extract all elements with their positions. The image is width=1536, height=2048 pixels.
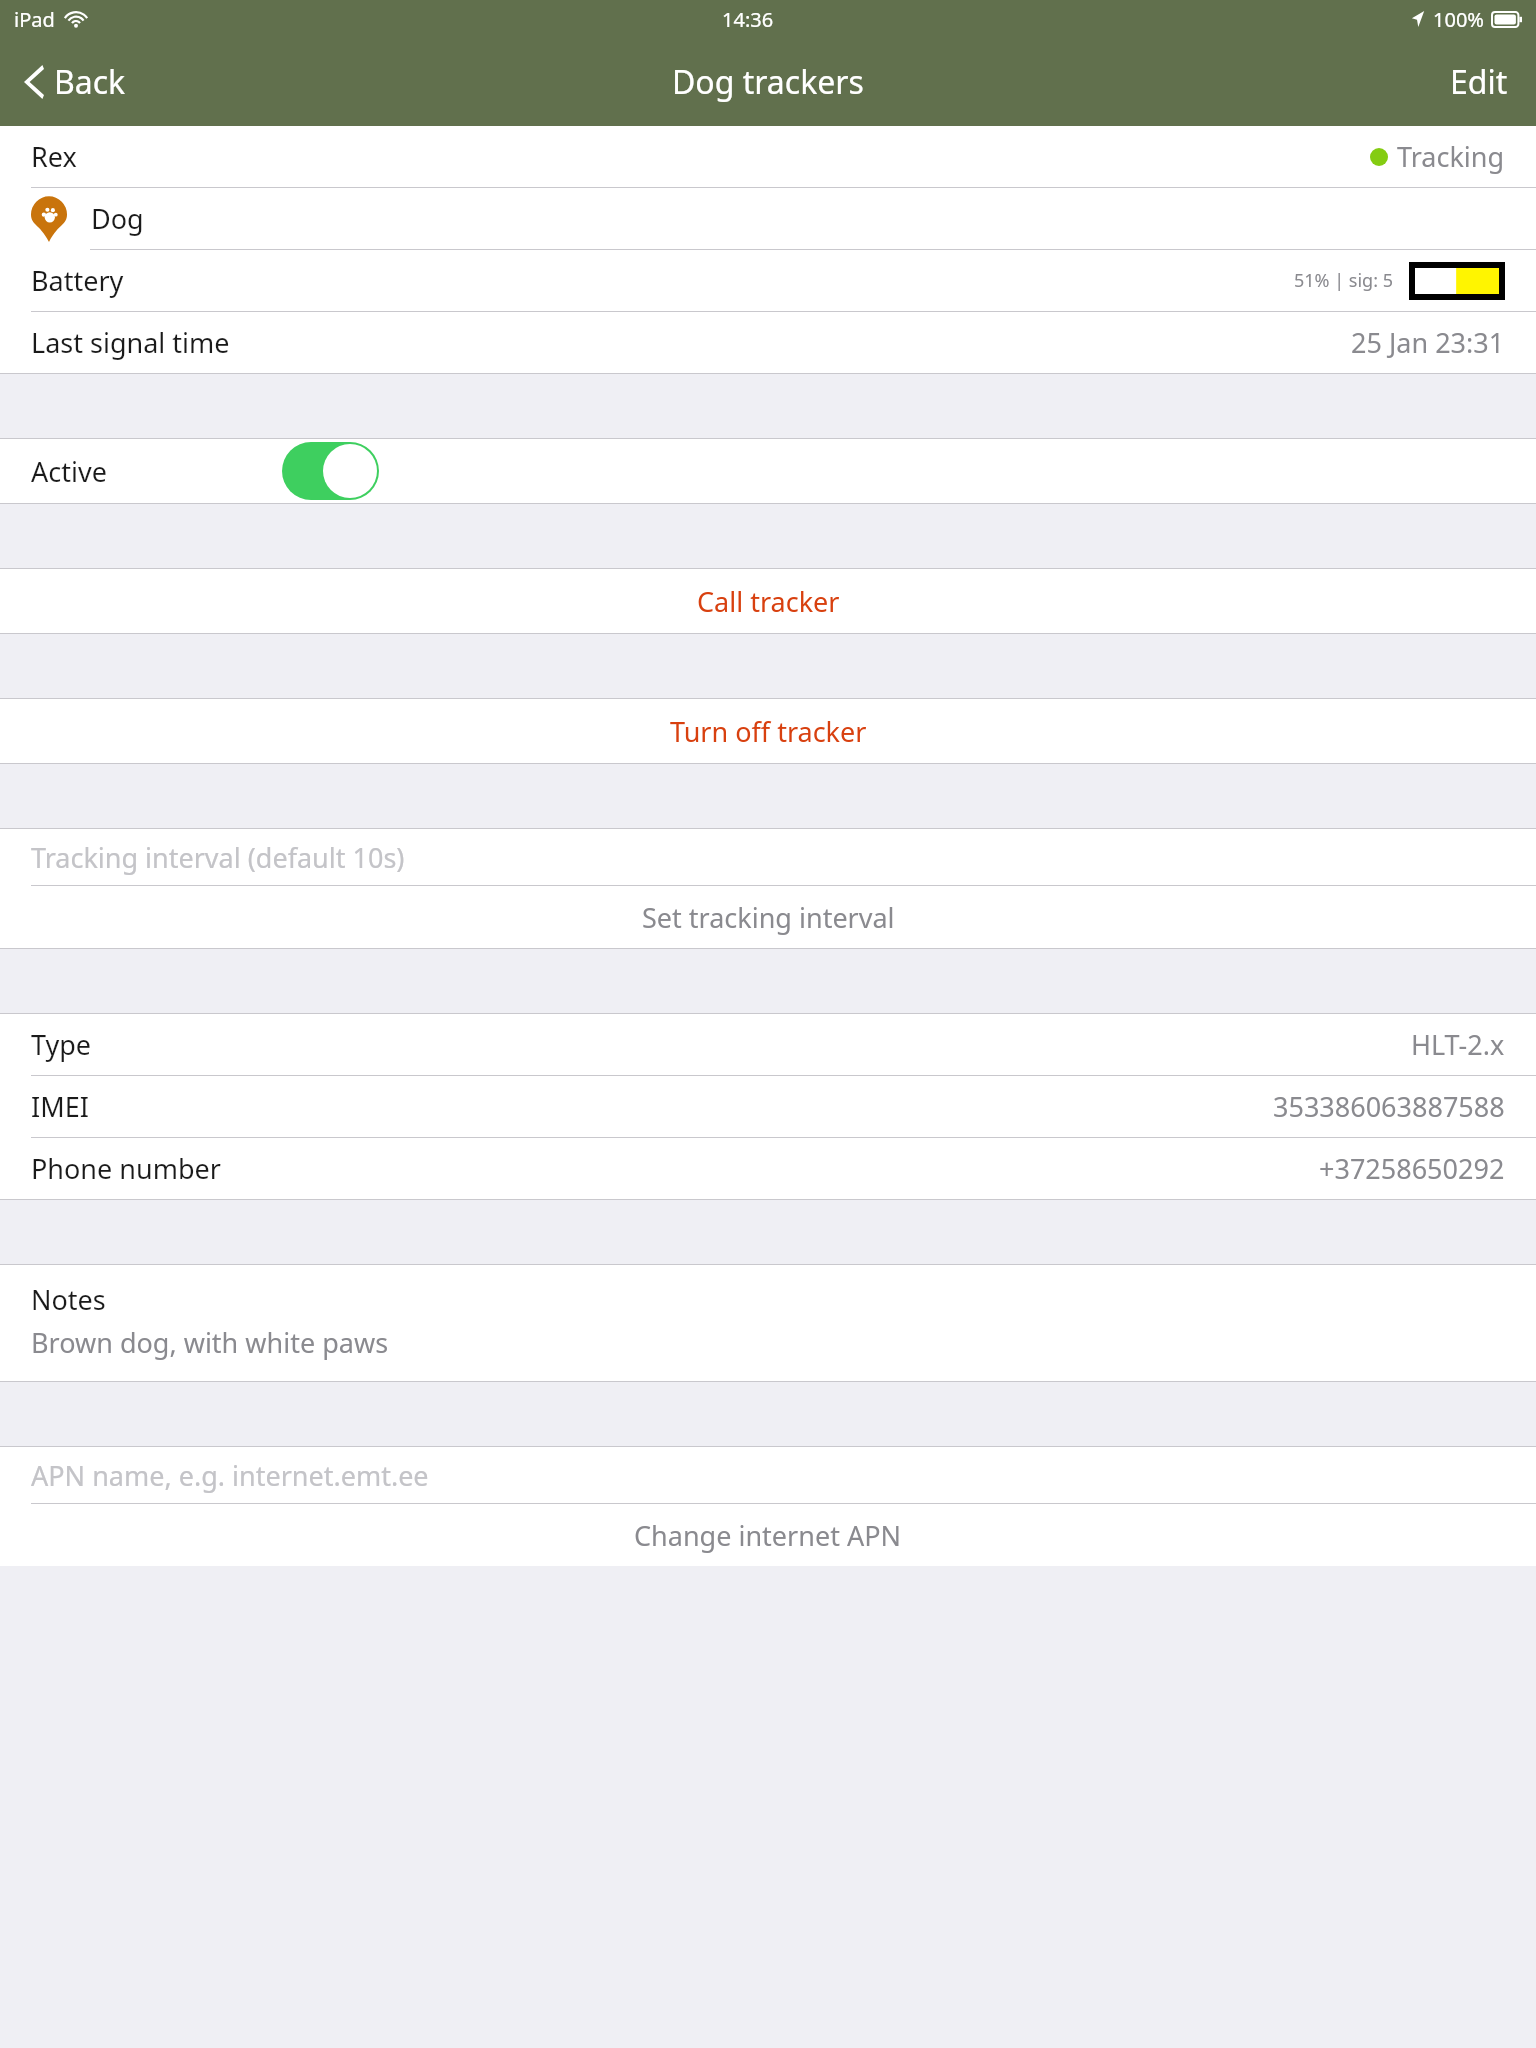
button[interactable]: Turn off tracker <box>0 699 1536 763</box>
button[interactable]: Change internet APN <box>0 1504 1536 1566</box>
staticText: Last signal time <box>31 324 230 361</box>
button[interactable]: Rex <box>0 126 1536 187</box>
staticText: APN name, e.g. internet.emt.ee <box>31 1457 429 1494</box>
staticText: 100% <box>1433 6 1484 33</box>
staticText: Tracking interval (default 10s) <box>31 839 405 876</box>
button[interactable]: Notes <box>0 1265 1536 1381</box>
staticText: Set tracking interval <box>642 899 895 936</box>
button[interactable]: Pet type <box>0 188 1536 249</box>
button[interactable]: APN name, e.g. internet.emt.ee <box>0 1447 1536 1503</box>
staticText: Tracking <box>1397 138 1505 175</box>
staticText: Battery <box>31 262 124 299</box>
staticText: Change internet APN <box>634 1517 902 1554</box>
staticText: Dog <box>91 200 144 237</box>
staticText: +37258650292 <box>1319 1150 1505 1187</box>
staticText: Active <box>31 453 107 490</box>
button[interactable]: Back <box>0 46 150 118</box>
staticText: Phone number <box>31 1150 221 1187</box>
staticText: Notes <box>31 1281 106 1318</box>
staticText: Call tracker <box>697 583 840 620</box>
staticText: 25 Jan 23:31 <box>1351 324 1505 361</box>
other: Battery 51% <box>1409 262 1505 300</box>
staticText: 353386063887588 <box>1273 1088 1505 1125</box>
staticText: Brown dog, with white paws <box>31 1324 389 1361</box>
button[interactable]: Tracking interval (default 10s) <box>0 829 1536 885</box>
button[interactable]: Active <box>0 439 1536 503</box>
button[interactable]: Last signal time <box>0 312 1536 373</box>
staticText: Back <box>54 60 126 104</box>
staticText: iPad <box>14 6 55 33</box>
staticText: IMEI <box>31 1088 89 1125</box>
button[interactable]: Active toggle, on <box>282 442 379 500</box>
staticText: 51% | sig: 5 <box>1294 268 1393 293</box>
button[interactable]: Call tracker <box>0 569 1536 633</box>
button[interactable]: IMEI <box>0 1076 1536 1137</box>
staticText: Dog trackers <box>672 60 864 104</box>
button[interactable]: Type <box>0 1014 1536 1075</box>
staticText: Type <box>31 1026 92 1063</box>
staticText: Turn off tracker <box>670 713 867 750</box>
staticText: HLT-2.x <box>1411 1026 1505 1063</box>
staticText: 14:36 <box>722 6 774 33</box>
button[interactable]: Battery <box>0 250 1536 311</box>
button[interactable]: Set tracking interval <box>0 886 1536 948</box>
other: Pet type <box>31 196 67 242</box>
button[interactable]: Edit <box>1422 46 1536 118</box>
staticText: Edit <box>1450 60 1508 104</box>
staticText: Rex <box>31 138 77 175</box>
button[interactable]: Phone number <box>0 1138 1536 1199</box>
